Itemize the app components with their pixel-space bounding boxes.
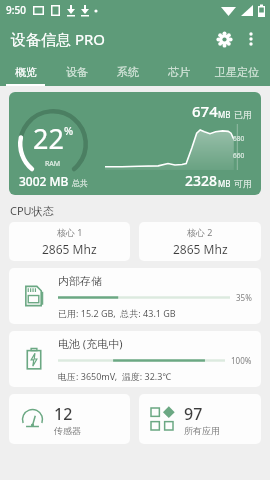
staticText: 12 bbox=[54, 403, 73, 425]
button[interactable]: 22 bbox=[9, 92, 261, 195]
button[interactable]: Sensors bbox=[9, 394, 130, 444]
staticText: 内部存储 bbox=[58, 274, 102, 288]
button[interactable]: Settings bbox=[210, 25, 238, 53]
staticText: 芯片 bbox=[168, 65, 190, 79]
staticText: 电池 (充电中) bbox=[58, 336, 123, 351]
staticText: 概览 bbox=[15, 65, 37, 79]
button[interactable]: 核心 1 bbox=[9, 222, 130, 261]
other: Internal storage bbox=[19, 281, 49, 311]
staticText: 2865 Mhz bbox=[42, 241, 97, 257]
other: Sensors bbox=[18, 405, 46, 433]
button[interactable]: 卫星定位 bbox=[204, 58, 270, 86]
button[interactable]: All apps bbox=[139, 394, 261, 444]
staticText: RAM bbox=[45, 159, 61, 169]
staticText: 680 bbox=[233, 134, 245, 143]
staticText: % bbox=[64, 123, 74, 138]
staticText: MB bbox=[218, 178, 231, 189]
staticText: 所有应用 bbox=[184, 425, 220, 436]
staticText: 设备信息 PRO bbox=[11, 29, 106, 49]
other: All apps bbox=[148, 405, 176, 433]
staticText: 已用: 15.2 GB, 总共: 43.1 GB bbox=[58, 307, 176, 319]
staticText: 35% bbox=[236, 292, 252, 303]
staticText: 100% bbox=[231, 355, 252, 366]
staticText: 总共 bbox=[72, 178, 88, 188]
staticText: 已用 bbox=[234, 109, 252, 120]
button[interactable]: 芯片 bbox=[153, 58, 204, 86]
staticText: 可用 bbox=[234, 178, 252, 189]
staticText: 9:50 bbox=[6, 3, 26, 17]
staticText: 核心 1 bbox=[57, 226, 83, 238]
staticText: 660 bbox=[233, 151, 245, 160]
staticText: MB bbox=[218, 109, 231, 120]
button[interactable]: 概览 bbox=[0, 58, 51, 86]
button[interactable]: Battery bbox=[9, 331, 261, 387]
staticText: 3002 MB bbox=[19, 173, 69, 189]
staticText: 核心 2 bbox=[187, 226, 213, 238]
staticText: 传感器 bbox=[54, 425, 81, 436]
button[interactable]: 设备 bbox=[51, 58, 102, 86]
staticText: 2865 Mhz bbox=[173, 241, 228, 257]
staticText: 22 bbox=[33, 120, 64, 157]
staticText: CPU状态 bbox=[10, 203, 54, 218]
staticText: 2328 bbox=[185, 171, 218, 190]
button[interactable]: Internal storage bbox=[9, 268, 261, 324]
button[interactable]: 系统 bbox=[102, 58, 153, 86]
other: Battery bbox=[19, 344, 49, 374]
staticText: 系统 bbox=[117, 65, 139, 79]
button[interactable]: 核心 2 bbox=[139, 222, 261, 261]
staticText: 674 bbox=[192, 101, 218, 121]
staticText: 卫星定位 bbox=[215, 65, 259, 79]
button[interactable]: More options bbox=[238, 26, 264, 52]
staticText: 电压: 3650mV, 温度: 32.3℃ bbox=[58, 370, 172, 382]
staticText: 设备 bbox=[66, 65, 88, 79]
staticText: 97 bbox=[184, 403, 203, 425]
